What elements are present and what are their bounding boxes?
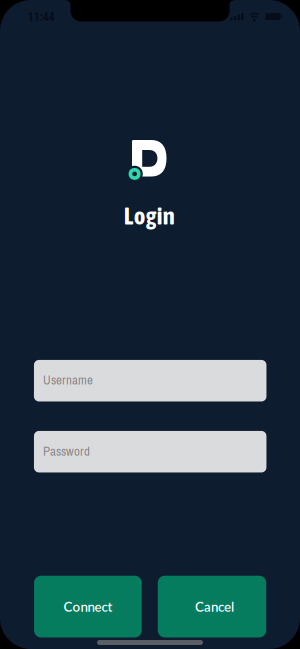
staticText: Login [124,202,175,230]
button[interactable]: Connect [34,576,142,637]
staticText: Username [43,371,93,389]
button[interactable]: Username [34,360,266,401]
button[interactable]: Cancel [158,576,266,637]
staticText: Password [43,442,90,460]
staticText: Connect [63,599,112,615]
staticText: 11:44 [27,9,54,24]
staticText: Cancel [195,599,234,615]
button[interactable]: Password [34,431,266,472]
